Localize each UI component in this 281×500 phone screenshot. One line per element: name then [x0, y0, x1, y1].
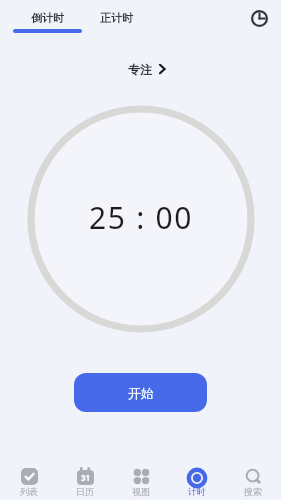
button[interactable]: 开始	[74, 373, 207, 412]
staticText: 专注	[128, 62, 152, 77]
staticText: 开始	[128, 385, 154, 401]
button[interactable]: 搜索	[225, 454, 281, 500]
button[interactable]: 视图	[113, 454, 169, 500]
staticText: 列表	[20, 486, 38, 497]
button[interactable]: 计时	[169, 454, 225, 500]
staticText: 搜索	[244, 486, 262, 497]
button[interactable]: 专注	[128, 60, 168, 78]
staticText: 正计时	[100, 11, 133, 25]
button[interactable]: 倒计时	[13, 0, 82, 36]
button[interactable]: 列表	[0, 454, 57, 500]
button[interactable]: 正计时	[82, 0, 151, 36]
staticText: 日历	[76, 486, 94, 497]
button[interactable]: 31	[57, 454, 113, 500]
staticText: 倒计时	[31, 11, 64, 25]
staticText: 31	[81, 472, 91, 483]
staticText: 25 : 00	[89, 197, 194, 238]
button[interactable]	[249, 8, 269, 28]
staticText: 视图	[132, 486, 150, 497]
staticText: 计时	[188, 486, 206, 497]
